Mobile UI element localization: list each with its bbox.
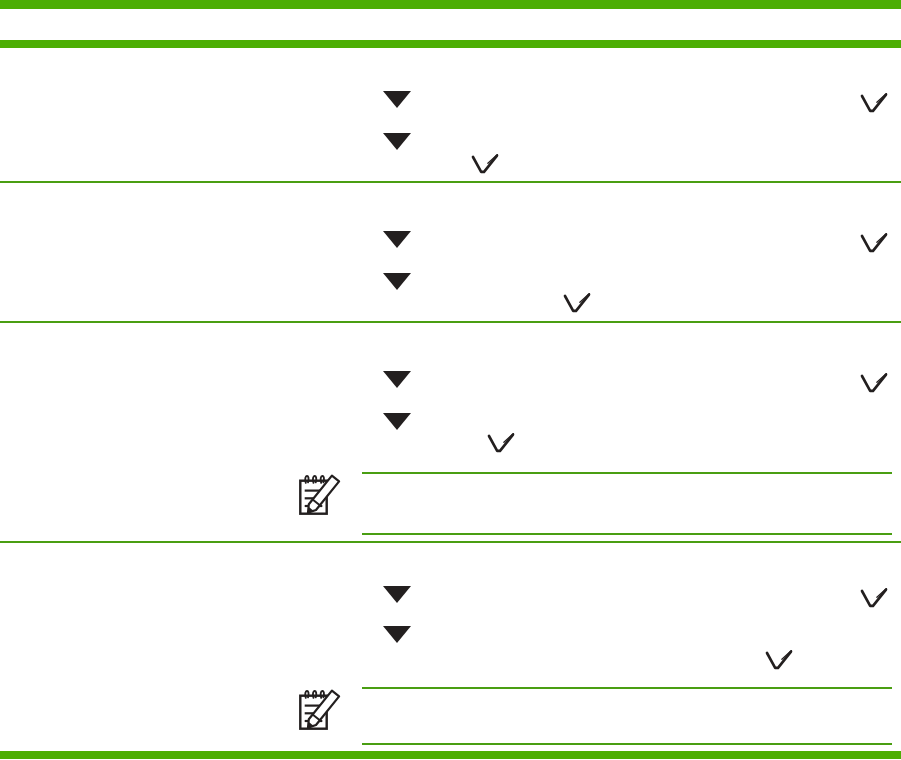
button[interactable]: Step <box>0 268 901 324</box>
button[interactable]: Step <box>0 583 901 639</box>
button[interactable]: Step <box>0 86 901 142</box>
button[interactable]: Step <box>0 128 901 182</box>
button[interactable]: Step <box>0 228 901 284</box>
button[interactable]: Step <box>0 368 901 424</box>
button[interactable]: Step <box>0 410 901 466</box>
button[interactable]: Step <box>0 623 901 679</box>
